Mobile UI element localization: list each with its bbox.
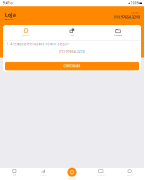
- staticText: 9:41: [3, 1, 10, 5]
- staticText: Consumo: [40, 174, 47, 176]
- staticText: Loja: [5, 11, 16, 18]
- staticText: seu número: [131, 12, 140, 14]
- button[interactable]: Recarga: [58, 169, 86, 180]
- button[interactable]: Pagamento: [86, 169, 115, 176]
- button[interactable]: Recarga: [3, 28, 49, 36]
- staticText: (11) 97654-3210: [114, 14, 140, 19]
- staticText: CONTINUAR: [63, 64, 80, 68]
- staticText: Início: [13, 174, 16, 176]
- staticText: 1. A recarga será feita para o número a …: [7, 42, 70, 46]
- staticText: Recarga: [68, 177, 75, 179]
- staticText: 100%: [131, 1, 139, 5]
- button[interactable]: Chat: [49, 28, 95, 36]
- button[interactable]: Consumo: [29, 169, 58, 176]
- staticText: Pagamento: [114, 35, 122, 36]
- staticText: Pagamento: [97, 174, 105, 176]
- staticText: (11) 97654-3210: [59, 50, 85, 54]
- button[interactable]: Pagamento: [95, 28, 141, 36]
- button[interactable]: Suporte: [115, 169, 144, 176]
- staticText: Chat: [70, 35, 73, 36]
- staticText: Suporte: [127, 174, 133, 176]
- button[interactable]: Início: [0, 169, 29, 176]
- staticText: Recarga: [22, 35, 29, 36]
- button[interactable]: CONTINUAR: [5, 62, 139, 70]
- staticText: minha conta: [5, 18, 14, 20]
